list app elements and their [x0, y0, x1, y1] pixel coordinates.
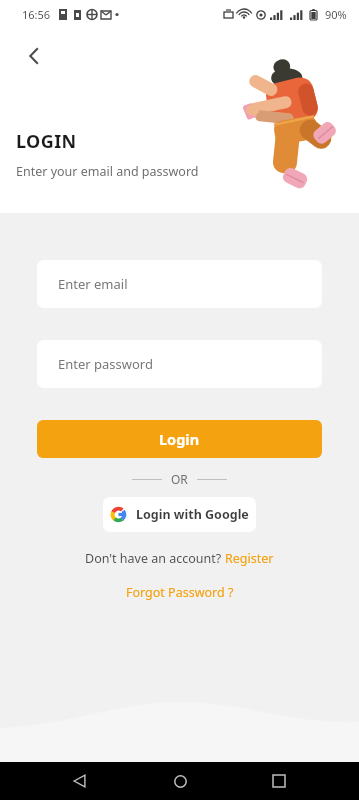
staticText: Enter your email and password [16, 163, 199, 180]
staticText: OR [171, 471, 188, 487]
staticText: 16:56 [22, 7, 51, 22]
button[interactable]: Login with Google [103, 497, 256, 532]
button[interactable]: Enter password [37, 340, 322, 388]
staticText: 90% [325, 7, 347, 22]
staticText: Register [225, 550, 274, 567]
button[interactable]: Back [60, 762, 100, 800]
staticText: Don't have an account? [85, 550, 225, 567]
staticText: LOGIN [16, 129, 77, 154]
button[interactable]: Login [37, 420, 322, 458]
staticText: Login with Google [136, 506, 249, 523]
button[interactable]: Home [160, 762, 200, 800]
button[interactable]: Recent apps [259, 762, 299, 800]
staticText: Login [159, 429, 200, 449]
button[interactable]: Forgot Password ? [120, 582, 240, 603]
button[interactable]: Register [225, 550, 274, 567]
staticText: Enter password [58, 355, 153, 373]
staticText: Enter email [58, 275, 128, 293]
staticText: Forgot Password ? [126, 584, 234, 601]
button[interactable]: Back [14, 36, 54, 76]
button[interactable]: Enter email [37, 260, 322, 308]
